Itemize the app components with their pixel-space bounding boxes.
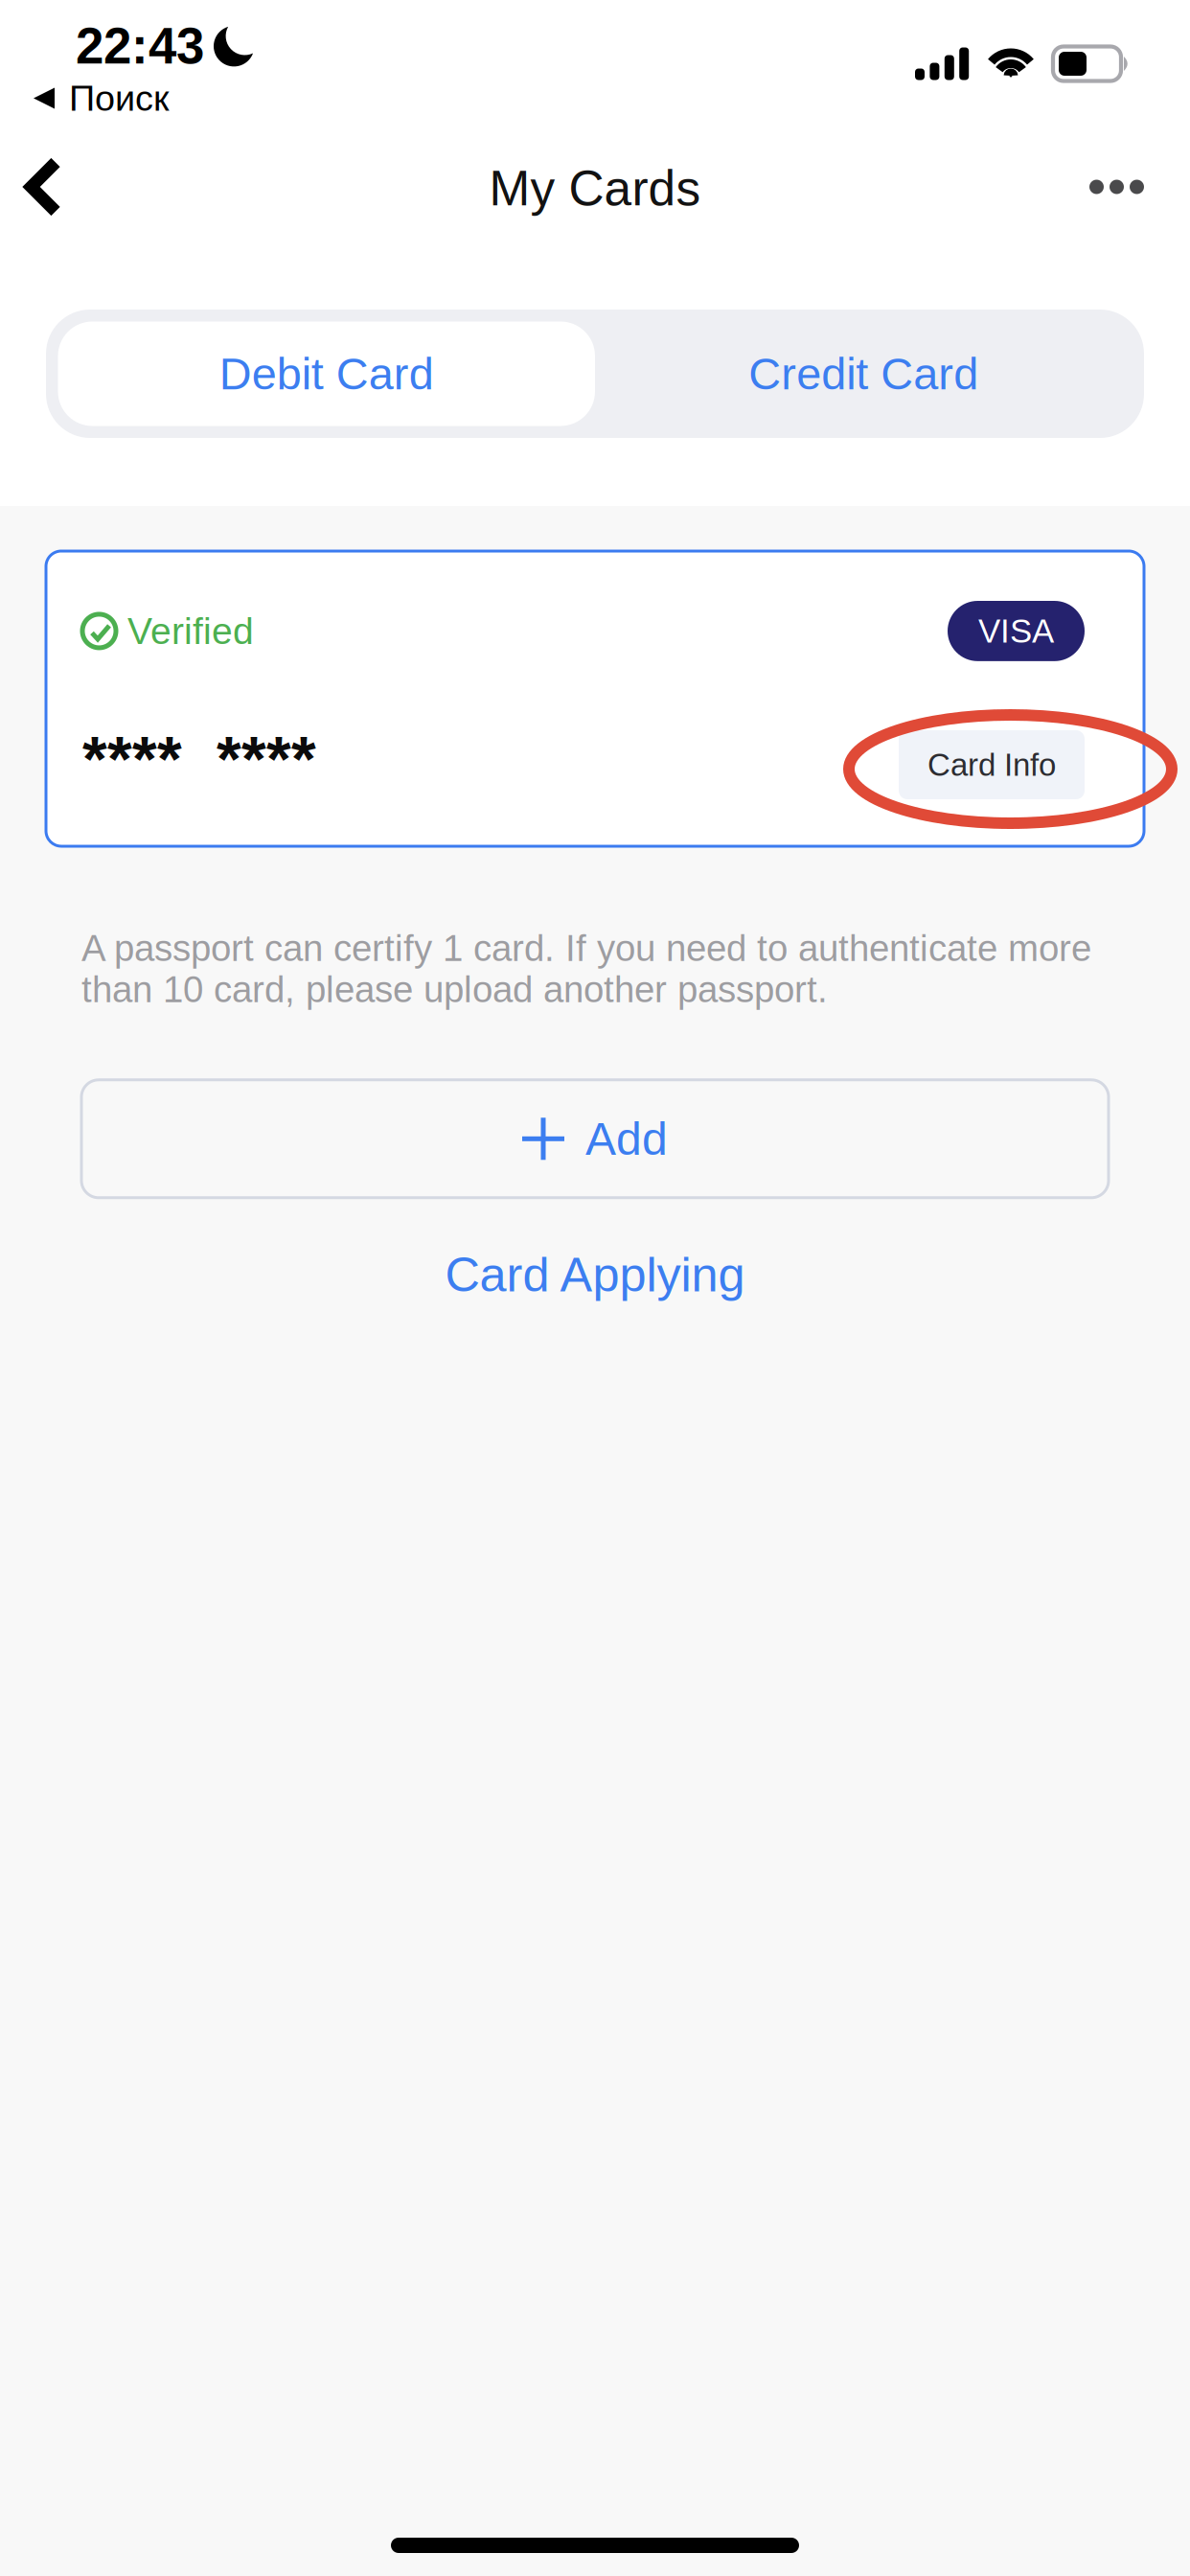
staticText: Поиск	[69, 78, 170, 118]
button[interactable]: Credit Card	[595, 310, 1144, 438]
staticText: Card Info	[927, 747, 1056, 782]
staticText: Verified	[127, 610, 254, 652]
button[interactable]: Card Info	[899, 730, 1085, 799]
staticText: My Cards	[489, 161, 701, 216]
button[interactable]: More options	[1031, 118, 1190, 256]
staticText: Card Applying	[445, 1248, 745, 1302]
staticText: VISA	[978, 612, 1054, 650]
staticText: 22:43	[76, 18, 204, 74]
button[interactable]: Back	[0, 128, 138, 245]
button[interactable]: Card Applying	[0, 1226, 1190, 1323]
staticText: Debit Card	[219, 349, 434, 399]
staticText: A passport can certify 1 card. If you ne…	[81, 928, 1091, 1010]
staticText: Credit Card	[748, 349, 978, 399]
button[interactable]: Debit Card	[46, 310, 595, 438]
button[interactable]: Add	[0, 1080, 1190, 1198]
staticText: Add	[585, 1113, 668, 1164]
staticText: **** ****	[82, 724, 316, 794]
